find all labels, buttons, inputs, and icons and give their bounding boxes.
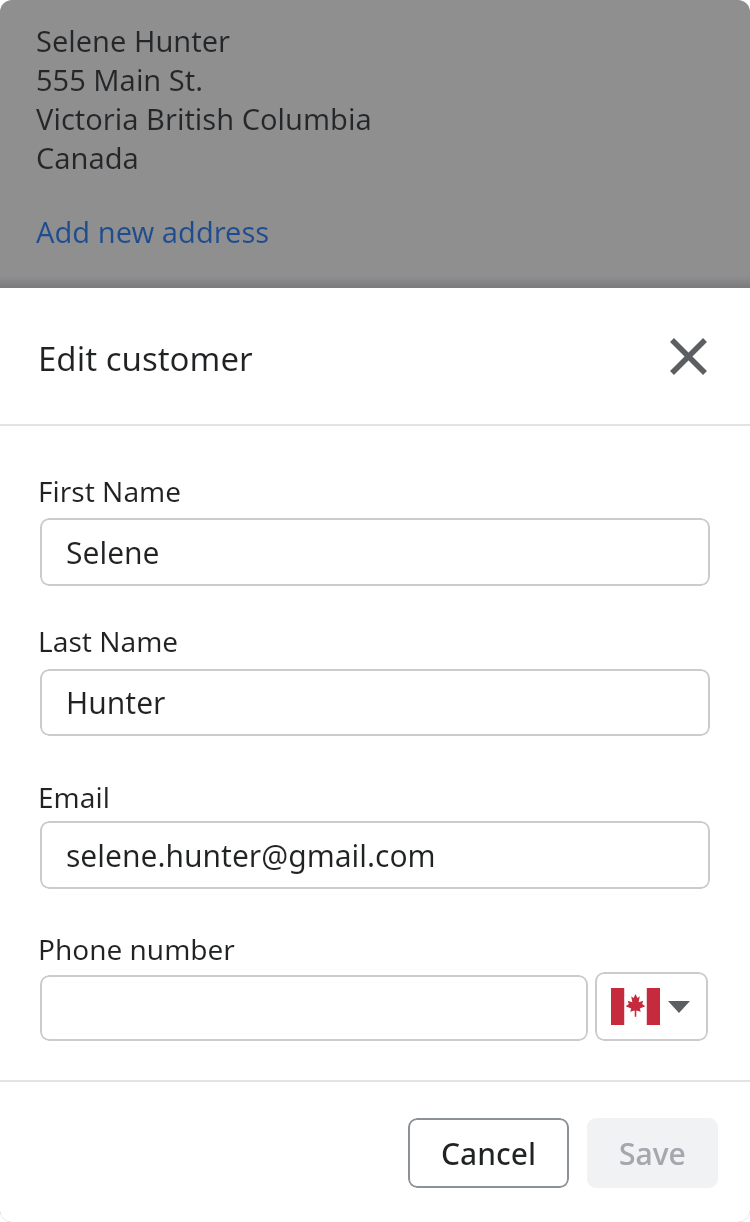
- staticText: First Name: [38, 472, 182, 510]
- button[interactable]: Cancel: [408, 1118, 569, 1188]
- button[interactable]: Add new address: [36, 212, 270, 251]
- staticText: Last Name: [38, 622, 179, 660]
- staticText: Victoria British Columbia: [36, 99, 372, 138]
- staticText: Edit customer: [38, 336, 253, 381]
- staticText: Email: [38, 778, 110, 816]
- staticText: Cancel: [441, 1133, 537, 1174]
- button[interactable]: [40, 975, 588, 1041]
- button[interactable]: [595, 972, 708, 1041]
- staticText: 555 Main St.: [36, 60, 203, 99]
- staticText: Save: [619, 1133, 686, 1174]
- staticText: Canada: [36, 138, 139, 177]
- staticText: selene.hunter@gmail.com: [66, 835, 436, 876]
- button[interactable]: Selene: [40, 518, 710, 586]
- staticText: Phone number: [38, 930, 235, 968]
- button[interactable]: Save: [587, 1118, 718, 1188]
- button[interactable]: Hunter: [40, 669, 710, 736]
- button[interactable]: [656, 324, 720, 388]
- staticText: Hunter: [66, 682, 166, 723]
- button[interactable]: selene.hunter@gmail.com: [40, 821, 710, 889]
- staticText: Selene Hunter: [36, 21, 231, 60]
- staticText: Selene: [66, 532, 160, 573]
